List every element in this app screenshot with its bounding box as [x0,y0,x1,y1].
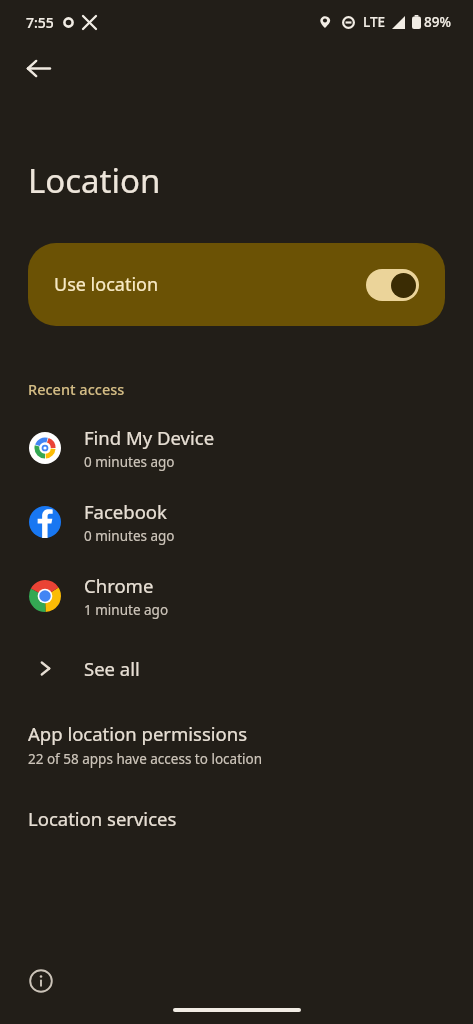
staticText: 89% [424,13,451,31]
staticText: 22 of 58 apps have access to location [28,750,262,768]
staticText: 7:55 [26,13,54,32]
staticText: App location permissions [28,721,248,746]
button[interactable]: Chrome [0,571,473,621]
button[interactable]: Use location [28,243,445,326]
staticText: 0 minutes ago [84,527,175,545]
staticText: Facebook [84,499,167,524]
staticText: Find My Device [84,425,215,450]
button[interactable]: More information [26,966,56,996]
staticText: Use location [54,272,159,297]
button[interactable]: Find My Device [0,423,473,473]
staticText: Recent access [28,379,125,399]
button[interactable]: Back [14,44,62,92]
staticText: Location services [28,806,177,831]
staticText: Chrome [84,573,154,598]
button[interactable]: App location permissions [0,717,473,772]
staticText: See all [84,656,140,681]
staticText: Location [28,158,161,203]
staticText: 0 minutes ago [84,453,175,471]
staticText: LTE [363,13,386,31]
staticText: 1 minute ago [84,601,169,619]
button[interactable]: Facebook [0,497,473,547]
button[interactable]: See all [0,643,473,693]
button[interactable]: Location services [0,802,473,835]
